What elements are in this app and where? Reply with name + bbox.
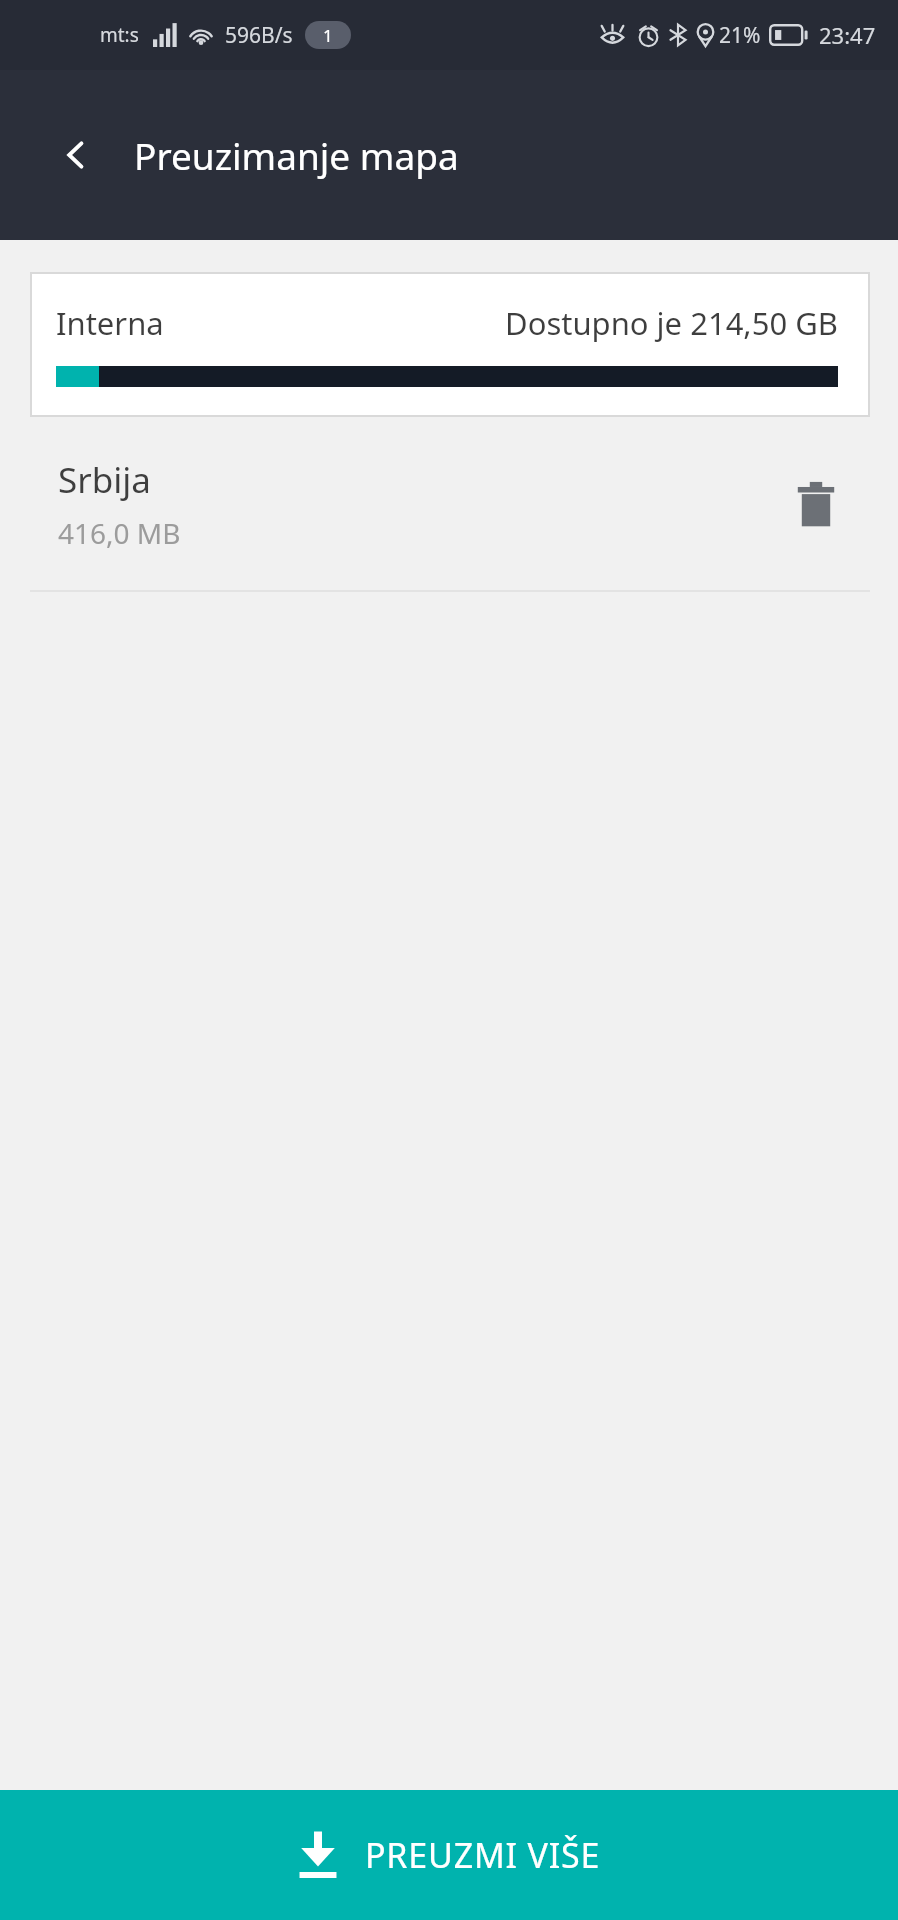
staticText: 21% <box>719 21 761 50</box>
button[interactable]: Back <box>44 123 108 187</box>
staticText: Srbija <box>58 456 151 504</box>
staticText: mt:s <box>100 22 139 48</box>
button[interactable]: Delete <box>780 468 852 540</box>
button[interactable]: Interna <box>30 272 870 417</box>
staticText: 1 <box>323 24 333 47</box>
staticText: Dostupno je 214,50 GB <box>505 302 838 344</box>
staticText: Interna <box>56 302 164 344</box>
staticText: Preuzimanje mapa <box>134 130 459 180</box>
staticText: PREUZMI VIŠE <box>365 1832 601 1878</box>
staticText: 416,0 MB <box>58 514 181 552</box>
staticText: 23:47 <box>819 20 876 50</box>
staticText: 596B/s <box>225 21 293 50</box>
button[interactable]: PREUZMI VIŠE <box>0 1790 898 1920</box>
button[interactable]: Srbija <box>0 444 898 566</box>
